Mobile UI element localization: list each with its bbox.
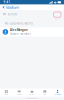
staticText: 9:41: [3, 0, 10, 4]
button[interactable]: Home: [0, 88, 13, 96]
staticText: Stadium: [6, 5, 20, 10]
staticText: No upcoming events: [5, 22, 33, 25]
staticText: Tickets: [17, 94, 22, 95]
button[interactable]: Alex Morgan: [0, 27, 64, 36]
staticText: Account: [55, 94, 61, 95]
button[interactable]: Stadium: [0, 5, 21, 10]
staticText: Season member: [10, 32, 31, 36]
button[interactable]: Map: [38, 88, 51, 96]
staticText: Map: [43, 94, 46, 95]
staticText: Alex Morgan: [10, 28, 28, 32]
staticText: Home: [4, 94, 8, 95]
button[interactable]: Order: [26, 88, 38, 96]
button[interactable]: Tickets: [13, 88, 26, 96]
staticText: GA 12: [55, 18, 59, 20]
staticText: MY TICKETS: [3, 12, 17, 16]
button[interactable]: Account: [51, 88, 64, 96]
staticText: Order: [29, 94, 34, 95]
